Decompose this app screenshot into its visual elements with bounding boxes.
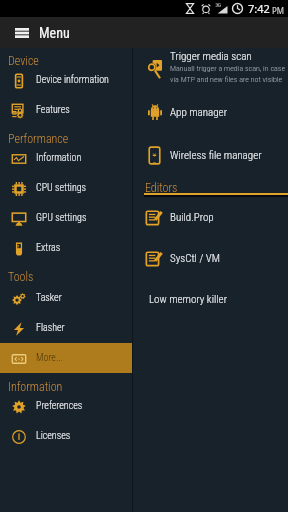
button[interactable]: Preferences — [0, 391, 132, 421]
staticText: App manager — [170, 106, 227, 119]
button[interactable]: Build.Prop — [133, 197, 288, 237]
button[interactable]: Information — [0, 143, 132, 173]
staticText: SysCtl / VM — [170, 252, 220, 265]
staticText: Licenses — [36, 430, 71, 442]
staticText: Features — [36, 104, 70, 116]
staticText: Flasher — [36, 322, 65, 334]
staticText: Menu — [39, 25, 70, 41]
button[interactable]: GPU settings — [0, 203, 132, 233]
staticText: 7:42 — [248, 1, 270, 16]
staticText: More... — [36, 352, 64, 364]
staticText: Performance — [8, 132, 69, 146]
button[interactable]: CPU settings — [0, 173, 132, 203]
button[interactable]: Features — [0, 95, 132, 125]
staticText: Tasker — [36, 292, 62, 304]
button[interactable]: Wireless file manager — [133, 135, 288, 175]
staticText: Information — [36, 152, 82, 164]
staticText: Editors — [145, 181, 178, 195]
button[interactable]: Tasker — [0, 283, 132, 313]
button[interactable]: Extras — [0, 233, 132, 263]
staticText: GPU settings — [36, 212, 87, 224]
button[interactable]: SysCtl / VM — [133, 238, 288, 278]
staticText: CPU settings — [36, 182, 87, 194]
staticText: via MTP and new files are not visible — [170, 75, 283, 86]
staticText: PM — [272, 5, 285, 16]
staticText: Wireless file manager — [170, 149, 262, 162]
button[interactable]: App manager — [133, 92, 288, 132]
staticText: Device — [8, 54, 39, 68]
button[interactable]: Trigger media scan — [133, 49, 288, 89]
button[interactable]: Licenses — [0, 421, 132, 451]
staticText: Information — [8, 380, 63, 394]
staticText: Extras — [36, 242, 61, 254]
staticText: Build.Prop — [170, 211, 214, 224]
staticText: Tools — [8, 270, 34, 284]
button[interactable]: Device information — [0, 65, 132, 95]
staticText: Trigger media scan — [170, 50, 252, 63]
staticText: Low memory killer — [149, 293, 227, 306]
staticText: Device information — [36, 74, 109, 86]
button[interactable]: Flasher — [0, 313, 132, 343]
button[interactable]: Low memory killer — [133, 282, 288, 316]
button[interactable]: More... — [0, 343, 132, 373]
staticText: Preferences — [36, 400, 83, 412]
button[interactable]: Open navigation menu — [9, 17, 35, 48]
staticText: Manuall trigger a media scan, in case — [170, 64, 286, 75]
